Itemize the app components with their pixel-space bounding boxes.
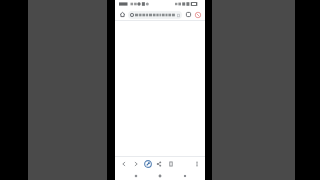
button[interactable]: More options <box>193 10 202 19</box>
button[interactable]: Tabs <box>184 10 193 19</box>
button[interactable]: Back <box>132 172 140 180</box>
button[interactable] <box>128 11 182 19</box>
button[interactable]: Bookmark <box>166 159 175 168</box>
button[interactable]: Home <box>118 10 127 19</box>
button[interactable]: Reload <box>143 159 153 169</box>
button[interactable]: Menu <box>192 159 201 168</box>
button[interactable]: Share <box>154 159 163 168</box>
button[interactable]: Forward <box>131 159 140 168</box>
button[interactable]: Back <box>119 159 128 168</box>
button[interactable]: Recents <box>181 172 189 180</box>
button[interactable]: Home <box>156 172 164 180</box>
